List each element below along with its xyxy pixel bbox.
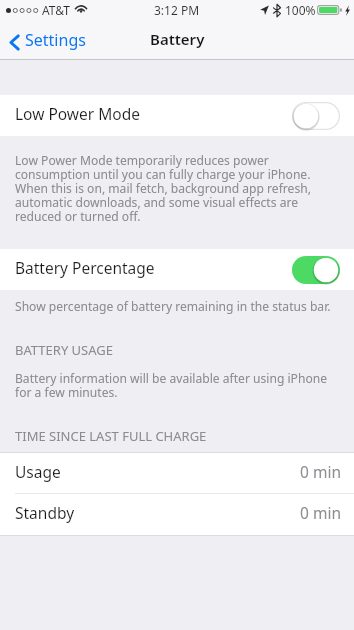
staticText: Low Power Mode	[15, 106, 140, 124]
staticText: BATTERY USAGE	[15, 341, 339, 359]
staticText: AT&T	[42, 2, 70, 18]
staticText: 3:12 PM	[154, 2, 200, 18]
button[interactable]: Battery Percentage	[0, 249, 354, 290]
staticText: Battery Percentage	[15, 260, 155, 278]
staticText: Settings	[25, 29, 86, 51]
staticText: Show percentage of battery remaining in …	[15, 298, 341, 314]
staticText: Battery information will be available af…	[15, 370, 341, 401]
button[interactable]: Settings	[0, 23, 96, 57]
button[interactable]: Toggle off	[292, 102, 340, 130]
staticText: TIME SINCE LAST FULL CHARGE	[15, 427, 339, 445]
button[interactable]: Usage	[0, 453, 354, 494]
button[interactable]: Low Power Mode	[0, 95, 354, 136]
staticText: Battery	[150, 29, 205, 49]
staticText: Standby	[15, 505, 75, 523]
staticText: 100%	[285, 2, 316, 18]
button[interactable]: Standby	[0, 494, 354, 535]
staticText: Low Power Mode temporarily reduces power…	[15, 152, 341, 225]
staticText: 0 min	[300, 505, 341, 523]
staticText: 0 min	[300, 464, 341, 482]
button[interactable]: Toggle on	[292, 256, 340, 284]
staticText: Usage	[15, 464, 61, 482]
